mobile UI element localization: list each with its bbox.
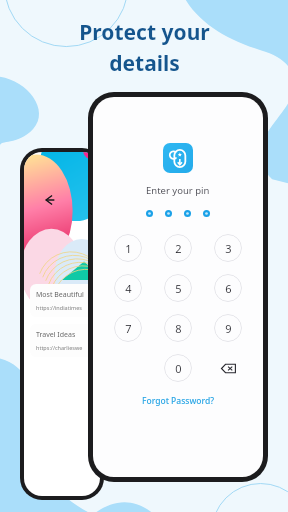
staticText: 2 xyxy=(175,241,182,256)
button[interactable]: 7 xyxy=(114,314,142,342)
button[interactable]: Forgot Password? xyxy=(138,393,218,409)
staticText: Protect your xyxy=(79,18,210,47)
staticText: 8 xyxy=(175,321,182,336)
button[interactable]: 2 xyxy=(164,234,192,262)
button[interactable]: 0 xyxy=(164,354,192,382)
staticText: Enter your pin xyxy=(146,184,210,197)
staticText: 9 xyxy=(225,321,232,336)
button[interactable]: Backspace xyxy=(214,354,242,382)
button[interactable]: 6 xyxy=(214,274,242,302)
staticText: 6 xyxy=(225,281,232,296)
staticText: 7 xyxy=(125,321,132,336)
button[interactable]: 9 xyxy=(214,314,242,342)
button[interactable]: 1 xyxy=(114,234,142,262)
button[interactable]: 3 xyxy=(214,234,242,262)
staticText: 4 xyxy=(125,281,132,296)
button[interactable]: 5 xyxy=(164,274,192,302)
button[interactable]: 4 xyxy=(114,274,142,302)
button[interactable]: Most Beautiful xyxy=(30,284,94,317)
staticText: Travel Ideas xyxy=(36,330,76,340)
button[interactable]: Travel Ideas xyxy=(30,324,94,357)
other: App icon xyxy=(163,143,193,173)
staticText: 3 xyxy=(225,241,232,256)
staticText: 0 xyxy=(175,361,182,376)
button[interactable]: 8 xyxy=(164,314,192,342)
staticText: 1 xyxy=(125,241,132,256)
staticText: Most Beautiful xyxy=(36,290,84,300)
staticText: https://charlieswe xyxy=(36,344,83,351)
staticText: https://indiatimes xyxy=(36,304,82,311)
staticText: details xyxy=(109,49,180,78)
staticText: Forgot Password? xyxy=(142,395,214,407)
staticText: 5 xyxy=(175,281,182,296)
